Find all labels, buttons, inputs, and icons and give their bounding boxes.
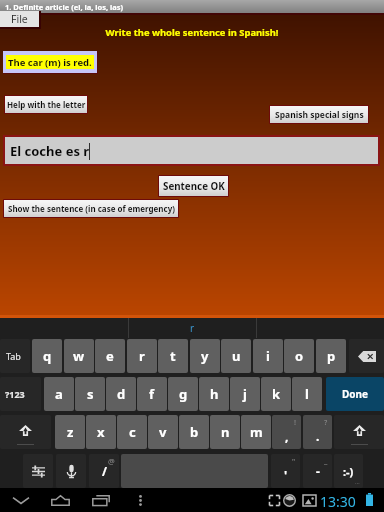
button[interactable]: File — [0, 11, 39, 27]
staticText: 1. Definite article (el, la, los, las) — [5, 2, 124, 12]
staticText: u — [232, 347, 241, 365]
button[interactable]: Symbols — [0, 377, 41, 411]
staticText: w — [73, 347, 85, 365]
button[interactable]: ' — [271, 454, 300, 488]
button[interactable]: q — [32, 339, 62, 373]
button[interactable]: More options — [128, 488, 152, 512]
staticText: Spanish special signs — [275, 109, 364, 121]
staticText: i — [266, 347, 270, 365]
staticText: a — [55, 385, 63, 403]
button[interactable]: s — [75, 377, 105, 411]
staticText: y — [201, 347, 209, 365]
button[interactable]: Settings — [23, 454, 53, 488]
staticText: Sentence OK — [163, 180, 225, 193]
staticText: e — [106, 347, 114, 365]
button[interactable]: Tab — [0, 339, 30, 373]
staticText: - — [316, 463, 320, 479]
staticText: ? — [324, 417, 328, 427]
staticText: j — [243, 385, 247, 403]
staticText: ?123 — [5, 388, 25, 400]
button[interactable]: j — [230, 377, 260, 411]
button[interactable]: u — [221, 339, 251, 373]
staticText: b — [190, 423, 199, 441]
staticText: c — [129, 423, 136, 441]
staticText: t — [170, 347, 176, 365]
staticText: x — [97, 423, 105, 441]
staticText: / — [102, 463, 107, 479]
button[interactable]: w — [64, 339, 94, 373]
button[interactable]: / — [89, 454, 119, 488]
button[interactable]: Shift — [334, 415, 384, 449]
staticText: 13:30 — [320, 492, 356, 511]
staticText: d — [117, 385, 126, 403]
button[interactable]: k — [261, 377, 291, 411]
button[interactable]: Emoticons — [334, 454, 363, 488]
button[interactable]: f — [137, 377, 167, 411]
button[interactable]: t — [158, 339, 188, 373]
button[interactable]: Spanish special signs — [270, 106, 368, 123]
staticText: " — [292, 456, 296, 466]
button[interactable]: z — [55, 415, 85, 449]
button[interactable]: l — [292, 377, 322, 411]
button[interactable]: Voice input — [56, 454, 86, 488]
staticText: r — [190, 321, 195, 335]
button[interactable]: Back — [6, 488, 36, 512]
button[interactable]: e — [95, 339, 125, 373]
staticText: Show the sentence (in case of emergency) — [8, 203, 175, 214]
staticText: z — [67, 423, 74, 441]
button[interactable]: y — [190, 339, 220, 373]
button[interactable]: . — [303, 415, 332, 449]
staticText: r — [139, 347, 145, 365]
staticText: p — [327, 347, 336, 365]
button[interactable]: , — [272, 415, 301, 449]
button[interactable]: v — [148, 415, 178, 449]
staticText: The car (m) is red. — [8, 56, 92, 69]
button[interactable]: d — [106, 377, 136, 411]
staticText: ! — [294, 417, 297, 427]
button[interactable]: Show the sentence (in case of emergency) — [4, 200, 178, 217]
staticText: q — [43, 347, 52, 365]
staticText: File — [11, 12, 28, 26]
button[interactable]: b — [179, 415, 209, 449]
button[interactable]: Sentence OK — [159, 176, 228, 196]
button[interactable]: Backspace — [349, 339, 384, 373]
button[interactable]: g — [168, 377, 198, 411]
staticText: … — [355, 478, 360, 486]
button[interactable]: a — [44, 377, 74, 411]
staticText: Help with the letter — [7, 99, 86, 110]
button[interactable]: El coche es r — [5, 137, 378, 164]
button[interactable]: n — [210, 415, 240, 449]
button[interactable]: o — [284, 339, 314, 373]
button[interactable]: h — [199, 377, 229, 411]
staticText: El coche es r — [10, 142, 90, 160]
button[interactable]: - — [303, 454, 332, 488]
staticText: , — [285, 428, 289, 444]
staticText: o — [295, 347, 304, 365]
button[interactable]: Help with the letter — [5, 96, 87, 113]
staticText: s — [87, 385, 94, 403]
button[interactable]: p — [316, 339, 346, 373]
staticText: k — [272, 385, 281, 403]
staticText: . — [316, 428, 320, 444]
button[interactable]: Recent apps — [86, 488, 116, 512]
staticText: Write the whole sentence in Spanish! — [0, 26, 384, 39]
staticText: ' — [284, 467, 288, 483]
staticText: _ — [324, 456, 328, 466]
staticText: n — [221, 423, 230, 441]
button[interactable]: c — [117, 415, 147, 449]
staticText: Done — [342, 387, 369, 401]
staticText: @ — [108, 456, 115, 466]
button[interactable]: Fullscreen — [266, 488, 282, 512]
staticText: g — [179, 385, 188, 403]
staticText: h — [210, 385, 219, 403]
button[interactable]: i — [253, 339, 283, 373]
button[interactable]: Home — [45, 488, 75, 512]
staticText: f — [149, 385, 155, 403]
button[interactable]: m — [241, 415, 271, 449]
button[interactable]: x — [86, 415, 116, 449]
button[interactable]: Shift — [0, 415, 51, 449]
button[interactable]: r — [127, 339, 157, 373]
staticText: l — [305, 385, 309, 403]
button[interactable]: Done — [326, 377, 384, 411]
